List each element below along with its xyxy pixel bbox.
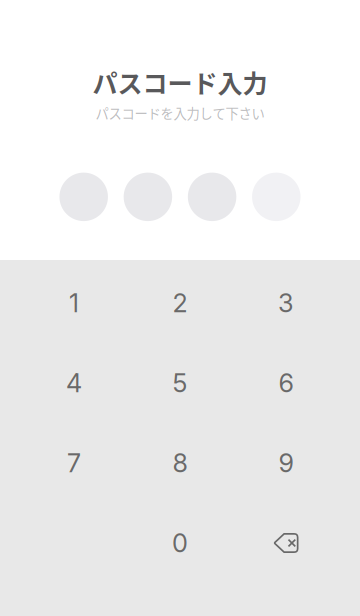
staticText: 4 [66, 368, 82, 398]
staticText: 1 [69, 288, 79, 318]
staticText: 5 [172, 368, 187, 398]
staticText: 0 [172, 528, 188, 558]
button[interactable]: 4 [21, 343, 127, 423]
button[interactable]: 9 [233, 423, 339, 503]
staticText: 3 [278, 288, 294, 318]
button[interactable]: Delete [233, 503, 339, 583]
staticText: パスコードを入力して下さい [95, 103, 264, 123]
button[interactable]: 6 [233, 343, 339, 423]
staticText: 8 [172, 448, 187, 478]
button[interactable]: 8 [127, 423, 233, 503]
staticText: パスコード入力 [92, 64, 267, 100]
staticText: 7 [67, 448, 81, 478]
button[interactable]: 0 [127, 503, 233, 583]
staticText: 9 [278, 448, 293, 478]
button[interactable]: 3 [233, 263, 339, 343]
staticText: 2 [172, 288, 187, 318]
button[interactable]: 7 [21, 423, 127, 503]
button[interactable]: 1 [21, 263, 127, 343]
button[interactable]: 5 [127, 343, 233, 423]
staticText: 6 [278, 368, 293, 398]
button[interactable]: 2 [127, 263, 233, 343]
